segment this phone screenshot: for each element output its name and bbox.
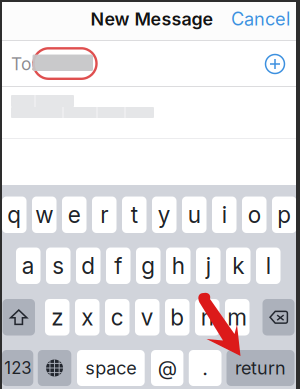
button[interactable]: f [106, 247, 130, 284]
staticText: c [111, 303, 124, 331]
staticText: o [248, 201, 261, 228]
button[interactable]: h [166, 247, 190, 284]
staticText: To: [11, 53, 36, 74]
button[interactable]: Add contact [263, 52, 287, 76]
staticText: Cancel [231, 8, 290, 30]
button[interactable]: i [212, 196, 236, 233]
staticText: g [141, 252, 155, 279]
button[interactable]: x [75, 299, 99, 335]
button[interactable]: z [45, 299, 69, 335]
staticText: v [141, 303, 154, 331]
button[interactable]: j [196, 247, 220, 284]
staticText: p [277, 201, 291, 228]
button[interactable]: Cancel [225, 9, 295, 29]
button[interactable]: t [122, 196, 146, 233]
button[interactable]: @ [151, 350, 183, 386]
button[interactable]: l [256, 247, 280, 284]
button[interactable]: v [135, 299, 159, 335]
staticText: @ [158, 356, 177, 380]
staticText: s [52, 252, 64, 279]
button[interactable]: a [16, 247, 40, 284]
staticText: r [100, 201, 108, 228]
staticText: New Message [90, 8, 213, 30]
button[interactable]: b [165, 299, 189, 335]
staticText: u [188, 201, 201, 228]
staticText: 123 [4, 358, 31, 378]
staticText: t [131, 201, 138, 228]
staticText: return [235, 357, 286, 379]
button[interactable]: p [272, 196, 296, 233]
button[interactable]: e [62, 196, 86, 233]
staticText: j [206, 252, 211, 279]
button[interactable]: m [225, 299, 249, 335]
staticText: e [68, 201, 81, 228]
staticText: h [172, 252, 185, 279]
staticText: i [222, 201, 227, 228]
button[interactable]: 123 [2, 350, 33, 386]
staticText: x [81, 303, 93, 331]
staticText: l [266, 252, 271, 279]
staticText: . [202, 356, 208, 380]
staticText: a [22, 252, 35, 279]
button[interactable]: s [46, 247, 70, 284]
button[interactable]: d [76, 247, 100, 284]
button[interactable]: n [195, 299, 219, 335]
staticText: m [227, 303, 247, 331]
button[interactable]: Shift [2, 299, 35, 335]
button[interactable]: q [2, 196, 26, 233]
button[interactable]: w [32, 196, 56, 233]
button[interactable]: r [92, 196, 116, 233]
button[interactable]: y [152, 196, 176, 233]
staticText: y [158, 201, 171, 228]
staticText: z [51, 303, 63, 331]
button[interactable]: k [226, 247, 250, 284]
button[interactable]: Next keyboard [38, 350, 71, 386]
staticText: f [114, 252, 122, 279]
staticText: b [170, 303, 184, 331]
staticText: w [35, 201, 53, 228]
button[interactable]: g [136, 247, 160, 284]
button[interactable]: c [105, 299, 129, 335]
button[interactable]: o [242, 196, 266, 233]
staticText: d [81, 252, 95, 279]
button[interactable]: u [182, 196, 206, 233]
button[interactable]: return [226, 350, 294, 386]
staticText: space [85, 357, 136, 379]
staticText: q [7, 201, 21, 228]
button[interactable]: . [189, 350, 221, 386]
staticText: n [201, 303, 214, 331]
button[interactable]: space [77, 350, 145, 386]
staticText: k [232, 252, 244, 279]
button[interactable]: Delete [262, 299, 294, 335]
